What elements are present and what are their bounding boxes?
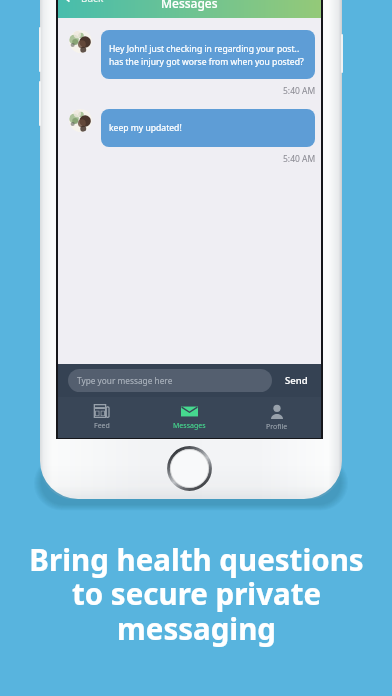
- staticText: Hey John! just checking in regarding you…: [109, 43, 304, 67]
- button[interactable]: Send: [285, 374, 308, 387]
- button[interactable]: Avatar: [69, 109, 92, 132]
- staticText: keep my updated!: [109, 122, 182, 134]
- button[interactable]: Hey John! just checking in regarding you…: [101, 30, 315, 79]
- staticText: Profile: [266, 422, 288, 432]
- staticText: Type your message here: [77, 375, 173, 386]
- button[interactable]: Back: [63, 0, 104, 5]
- staticText: Feed: [94, 421, 110, 431]
- button[interactable]: Messages: [145, 400, 233, 436]
- staticText: 5:40 AM: [283, 85, 316, 97]
- button[interactable]: Home: [167, 446, 212, 491]
- staticText: Messages: [173, 421, 206, 431]
- button[interactable]: Profile: [233, 399, 321, 437]
- button[interactable]: Type your message here: [68, 369, 272, 392]
- button[interactable]: Feed: [58, 399, 145, 436]
- staticText: Back: [81, 0, 104, 5]
- staticText: 5:40 AM: [283, 153, 316, 165]
- staticText: Bring health questions to secure private…: [29, 539, 364, 649]
- staticText: Send: [285, 374, 308, 387]
- button[interactable]: Avatar: [69, 30, 92, 53]
- staticText: Messages: [161, 0, 218, 11]
- button[interactable]: keep my updated!: [101, 109, 315, 147]
